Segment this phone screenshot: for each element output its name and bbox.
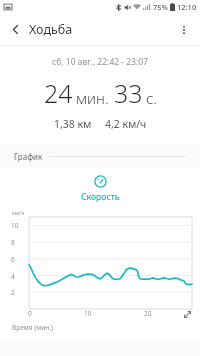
staticText: Ходьба <box>29 21 73 38</box>
staticText: 4 <box>11 272 15 281</box>
staticText: 75% <box>153 2 168 12</box>
staticText: сб, 10 авг., 22:42 - 23:07 <box>52 56 148 68</box>
staticText: 4,2 км/ч <box>105 117 147 131</box>
staticText: 2 <box>11 288 15 297</box>
staticText: с. <box>146 88 157 108</box>
staticText: км/ч <box>12 209 25 216</box>
staticText: мин. <box>76 88 109 108</box>
staticText: 20 <box>144 309 152 318</box>
button[interactable]: Ещё <box>173 19 195 41</box>
staticText: 12:10 <box>177 2 197 12</box>
staticText: График <box>14 151 43 162</box>
button[interactable]: Назад <box>5 19 26 40</box>
staticText: 6 <box>11 255 15 264</box>
staticText: 10 <box>11 221 19 230</box>
staticText: 24 <box>44 76 73 110</box>
staticText: Скорость <box>81 191 120 203</box>
staticText: 1,38 км <box>54 117 92 131</box>
button[interactable]: Развернуть график <box>182 309 192 319</box>
staticText: Время (мин.) <box>12 323 53 332</box>
staticText: 8 <box>11 238 15 247</box>
button[interactable]: Скорость <box>0 167 200 209</box>
staticText: 10 <box>84 309 92 318</box>
staticText: 33 <box>114 76 143 110</box>
staticText: 0 <box>28 309 32 318</box>
